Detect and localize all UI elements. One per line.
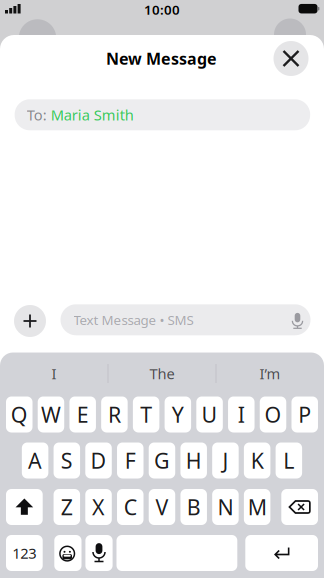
button[interactable]: P (291, 396, 318, 432)
staticText: W (41, 400, 61, 429)
staticText: A (28, 446, 42, 475)
staticText: P (298, 400, 311, 429)
staticText: O (264, 400, 281, 429)
button[interactable]: X (85, 489, 112, 525)
button[interactable]: K (244, 442, 270, 478)
staticText: B (187, 493, 201, 521)
button[interactable]: The (112, 360, 212, 386)
staticText: I (51, 364, 56, 383)
button[interactable]: F (117, 442, 143, 478)
button[interactable]: H (180, 442, 207, 478)
staticText: L (283, 446, 294, 475)
button[interactable]: Z (54, 489, 80, 525)
button[interactable]: Add attachment (14, 305, 46, 337)
staticText: Text Message • SMS (73, 311, 193, 329)
button[interactable]: 123 (6, 535, 43, 571)
button[interactable]: Shift (6, 489, 43, 525)
staticText: To: (27, 105, 47, 125)
button[interactable]: V (149, 489, 175, 525)
button[interactable]: To: Maria Smith (15, 99, 310, 130)
button[interactable]: Text Message (60, 304, 310, 335)
staticText: 10:00 (144, 1, 180, 18)
staticText: K (251, 446, 264, 475)
staticText: U (202, 400, 218, 429)
staticText: The (149, 364, 174, 383)
button[interactable]: S (54, 442, 80, 478)
button[interactable]: D (85, 442, 112, 478)
button[interactable]: Y (165, 396, 191, 432)
button[interactable]: Space (116, 535, 237, 571)
staticText: Z (61, 493, 73, 521)
staticText: V (155, 493, 168, 521)
staticText: New Message (106, 48, 217, 69)
button[interactable]: L (276, 442, 302, 478)
staticText: F (125, 446, 136, 475)
button[interactable]: Return (245, 535, 318, 571)
button[interactable]: O (260, 396, 286, 432)
button[interactable]: W (38, 396, 64, 432)
staticText: Q (11, 400, 28, 429)
button[interactable]: T (133, 396, 159, 432)
staticText: M (248, 493, 267, 521)
button[interactable]: N (212, 489, 239, 525)
staticText: X (92, 493, 105, 521)
staticText: H (186, 446, 202, 475)
staticText: N (217, 493, 233, 521)
button[interactable]: Close (273, 41, 308, 76)
staticText: T (140, 400, 152, 429)
staticText: Maria Smith (51, 105, 134, 125)
button[interactable]: U (196, 396, 223, 432)
staticText: D (90, 446, 106, 475)
button[interactable]: I (228, 396, 254, 432)
button[interactable]: Q (6, 396, 32, 432)
button[interactable]: G (149, 442, 175, 478)
staticText: C (124, 493, 137, 521)
button[interactable]: B (180, 489, 207, 525)
staticText: R (108, 400, 121, 429)
staticText: E (77, 400, 89, 429)
staticText: 123 (12, 543, 36, 563)
button[interactable]: I (4, 360, 104, 386)
staticText: Y (172, 400, 184, 429)
button[interactable]: Emoji (54, 535, 81, 571)
staticText: G (154, 446, 170, 475)
button[interactable]: M (244, 489, 270, 525)
staticText: J (222, 446, 228, 475)
staticText: I’m (259, 364, 280, 383)
button[interactable]: A (22, 442, 48, 478)
button[interactable]: R (101, 396, 128, 432)
staticText: S (61, 446, 73, 475)
button[interactable]: J (212, 442, 239, 478)
staticText: I (238, 400, 245, 429)
button[interactable]: Delete (281, 489, 318, 525)
button[interactable]: Dictate (85, 535, 113, 571)
button[interactable]: I’m (220, 360, 320, 386)
button[interactable]: E (69, 396, 96, 432)
button[interactable]: C (117, 489, 143, 525)
